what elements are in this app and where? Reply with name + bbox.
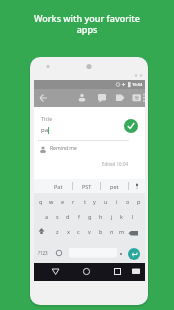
button[interactable] (129, 179, 145, 193)
staticText: y (93, 198, 96, 205)
staticText: ?123 (38, 250, 48, 256)
staticText: g (88, 213, 92, 220)
button[interactable] (124, 119, 138, 133)
staticText: o (126, 198, 130, 205)
staticText: k (120, 213, 123, 220)
button[interactable]: n (107, 225, 116, 238)
staticText: Works with your favorite apps (0, 12, 174, 36)
button[interactable]: e (58, 195, 67, 208)
staticText: d (66, 213, 70, 220)
button[interactable]: PST (73, 179, 100, 193)
staticText: a (45, 213, 49, 220)
button[interactable]: z (53, 225, 62, 238)
button[interactable]: o (123, 195, 132, 208)
staticText: t (84, 198, 86, 205)
button[interactable]: j (107, 210, 116, 223)
button[interactable]: pet (101, 179, 128, 193)
button[interactable]: y (90, 195, 99, 208)
button[interactable]: s (53, 210, 62, 223)
staticText: Pat (54, 183, 63, 190)
staticText: m (119, 228, 125, 235)
staticText: pa (41, 126, 49, 134)
staticText: pet (110, 183, 119, 190)
button[interactable]: x (64, 225, 73, 238)
staticText: u (104, 198, 108, 205)
button[interactable]: v (85, 225, 94, 238)
button[interactable]: m (117, 225, 126, 238)
staticText: Edited 16:04 (102, 161, 129, 167)
button[interactable]: i (112, 195, 121, 208)
staticText: b (99, 228, 103, 235)
staticText: q (39, 198, 43, 205)
staticText: p (137, 198, 141, 205)
button[interactable]: r (69, 195, 78, 208)
staticText: n (110, 228, 114, 235)
button[interactable]: g (85, 210, 94, 223)
button[interactable]: l (128, 210, 137, 223)
staticText: h (99, 213, 103, 220)
button[interactable]: d (63, 210, 72, 223)
button[interactable]: b (96, 225, 105, 238)
staticText: f (78, 213, 80, 220)
staticText: Title (41, 115, 52, 122)
button[interactable]: Remind me (50, 145, 77, 152)
button[interactable]: u (101, 195, 110, 208)
staticText: i (116, 198, 118, 205)
button[interactable]: q (36, 195, 45, 208)
staticText: s (56, 213, 59, 220)
staticText: l (132, 213, 134, 220)
button[interactable]: k (117, 210, 126, 223)
button[interactable]: f (74, 210, 83, 223)
button[interactable]: w (47, 195, 56, 208)
button[interactable]: c (74, 225, 83, 238)
button[interactable]: p (134, 195, 143, 208)
staticText: e (61, 198, 65, 205)
button[interactable]: h (96, 210, 105, 223)
staticText: PST (82, 183, 92, 190)
button[interactable]: t (80, 195, 89, 208)
staticText: w (49, 198, 54, 205)
staticText: x (67, 228, 70, 235)
staticText: c (77, 228, 80, 235)
button[interactable]: a (42, 210, 51, 223)
staticText: v (88, 228, 91, 235)
button[interactable] (128, 248, 140, 260)
staticText: z (56, 228, 59, 235)
staticText: 16:04 (132, 82, 143, 87)
staticText: r (72, 198, 75, 205)
staticText: j (111, 213, 113, 220)
button[interactable]: Pat (44, 179, 72, 193)
